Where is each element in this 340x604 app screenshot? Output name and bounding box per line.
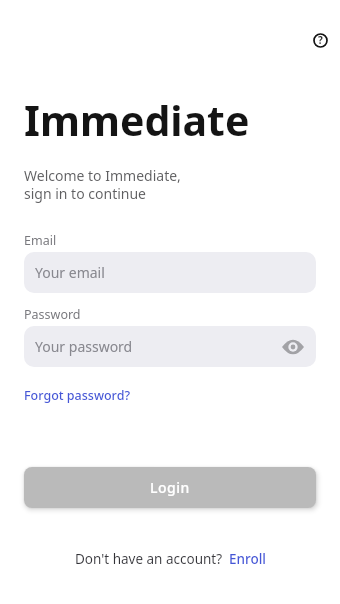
staticText: Password	[24, 306, 81, 323]
staticText: Email	[24, 232, 57, 249]
button[interactable]: Your password	[24, 326, 316, 367]
staticText: Your password	[35, 337, 133, 356]
button[interactable]: ?	[311, 31, 329, 49]
button[interactable]: Enroll	[229, 550, 266, 568]
button[interactable]: Login	[24, 467, 316, 508]
button[interactable]: Your email	[24, 252, 316, 293]
button[interactable]: Forgot password?	[24, 387, 130, 404]
staticText: ?	[318, 33, 323, 47]
staticText: Welcome to Immediate, sign in to continu…	[24, 166, 181, 203]
staticText: Your email	[35, 263, 105, 282]
staticText: Login	[150, 478, 190, 497]
staticText: Don't have an account?	[75, 550, 223, 568]
staticText: Immediate	[24, 92, 250, 148]
